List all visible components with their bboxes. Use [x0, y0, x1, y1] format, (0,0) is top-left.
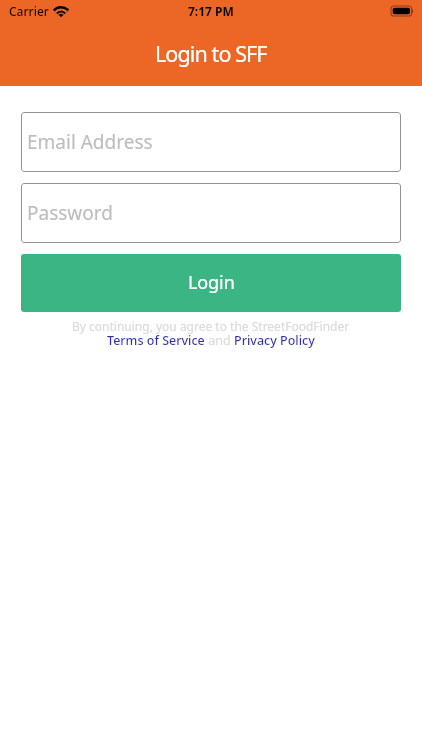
button[interactable]: Email Address [21, 112, 401, 172]
staticText: Password [27, 200, 113, 226]
button[interactable]: Privacy Policy [234, 332, 315, 349]
staticText: 7:17 PM [188, 3, 234, 19]
staticText: and [205, 332, 234, 349]
button[interactable]: Terms of Service [107, 332, 205, 349]
staticText: By continuing, you agree to the StreetFo… [72, 318, 350, 334]
other: Battery full [391, 6, 414, 16]
staticText: Carrier [9, 3, 49, 19]
staticText: Email Address [27, 129, 153, 155]
staticText: Login [188, 270, 235, 295]
staticText: Login to SFF [155, 39, 267, 68]
button[interactable]: Password [21, 183, 401, 243]
button[interactable]: Login [21, 254, 401, 312]
other: Wi-Fi signal [53, 6, 69, 17]
